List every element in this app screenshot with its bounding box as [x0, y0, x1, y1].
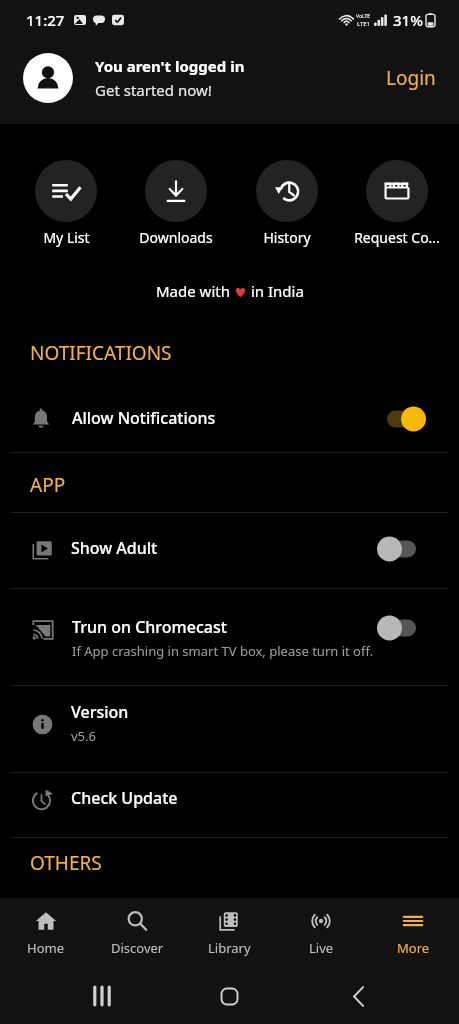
staticText: Login — [386, 65, 436, 91]
button[interactable]: Check Update — [0, 787, 459, 831]
button[interactable]: Back — [329, 968, 388, 1024]
staticText: Request Co... — [354, 228, 440, 247]
button[interactable]: Allow Notifications — [0, 407, 459, 451]
button[interactable]: Version — [0, 701, 459, 745]
staticText: NOTIFICATIONS — [30, 340, 172, 366]
staticText: Trun on Chromecast — [72, 616, 227, 638]
staticText: History — [263, 228, 311, 247]
button[interactable]: Login — [376, 57, 443, 99]
button[interactable]: Home — [200, 968, 259, 1024]
staticText: Allow Notifications — [72, 407, 216, 429]
staticText: APP — [30, 472, 66, 498]
staticText: v5.6 — [71, 727, 96, 745]
button[interactable]: Recent apps — [72, 968, 131, 1024]
staticText: Get started now! — [95, 80, 212, 100]
staticText: Show Adult — [71, 537, 158, 559]
button[interactable]: My List — [15, 160, 117, 247]
button[interactable]: Switch off — [377, 615, 416, 641]
staticText: You aren't logged in — [95, 56, 245, 76]
staticText: If App crashing in smart TV box, please … — [72, 642, 374, 660]
staticText: Library — [208, 939, 251, 957]
staticText: My List — [43, 228, 90, 247]
button[interactable]: You aren't logged in — [0, 36, 459, 120]
button[interactable]: Request Co... — [346, 160, 448, 247]
staticText: Live — [309, 939, 334, 957]
staticText: More — [397, 939, 430, 957]
button[interactable]: History — [236, 160, 338, 247]
staticText: Discover — [111, 939, 164, 957]
staticText: Version — [71, 701, 129, 723]
staticText: VoLTE — [356, 13, 371, 20]
staticText: Made with — [156, 281, 234, 301]
button[interactable]: Home — [0, 898, 91, 968]
staticText: in India — [247, 281, 304, 301]
staticText: Downloads — [139, 228, 213, 247]
staticText: LTE1 — [357, 20, 371, 28]
staticText: OTHERS — [30, 850, 102, 876]
staticText: Home — [27, 939, 64, 957]
staticText: 31% — [393, 10, 423, 30]
button[interactable]: Trun on Chromecast — [0, 616, 459, 660]
button[interactable]: Discover — [91, 898, 183, 968]
button[interactable]: Library — [183, 898, 275, 968]
button[interactable]: Switch on — [387, 406, 426, 432]
button[interactable]: More — [367, 898, 459, 968]
button[interactable]: Downloads — [125, 160, 227, 247]
staticText: 11:27 — [26, 10, 65, 30]
button[interactable]: Switch off — [377, 536, 416, 562]
button[interactable]: Show Adult — [0, 537, 459, 581]
staticText: Check Update — [71, 787, 178, 809]
button[interactable]: Live — [275, 898, 367, 968]
